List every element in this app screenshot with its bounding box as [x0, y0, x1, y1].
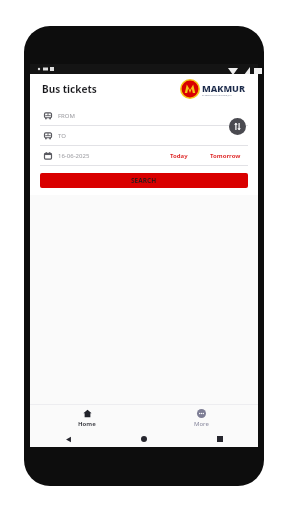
staticText: SEARCH — [131, 176, 157, 185]
button[interactable]: TO — [40, 126, 248, 146]
button[interactable]: Recents — [214, 433, 226, 445]
staticText: TO — [58, 132, 66, 140]
staticText: 16-06-2025 — [58, 152, 90, 160]
staticText: Bus tickets — [42, 82, 97, 96]
staticText: More — [194, 420, 209, 428]
button[interactable]: Today — [167, 152, 191, 160]
button[interactable]: Home — [138, 433, 150, 445]
button[interactable]: More — [144, 405, 258, 431]
staticText: PT PERUSAHAAN MAKMUR JAYA — [202, 94, 232, 97]
staticText: Today — [170, 152, 188, 160]
staticText: FROM — [58, 112, 75, 120]
staticText: MAKMUR — [202, 82, 246, 94]
button[interactable]: Back — [62, 433, 74, 445]
button[interactable]: SEARCH — [40, 173, 248, 188]
staticText: Tomorrow — [210, 152, 241, 160]
button[interactable]: Home — [30, 405, 144, 431]
button[interactable]: Swap origin and destination — [229, 118, 246, 135]
button[interactable]: FROM — [40, 106, 248, 126]
staticText: Home — [78, 420, 96, 428]
button[interactable]: Tomorrow — [207, 152, 244, 160]
button[interactable]: 16-06-2025 — [44, 152, 90, 160]
